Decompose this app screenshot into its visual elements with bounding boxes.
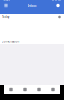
button[interactable]: Tab 3 — [32, 85, 46, 94]
button[interactable]: Tab 2 — [18, 85, 32, 94]
button[interactable]: More — [57, 14, 62, 19]
button[interactable]: Menu — [2, 2, 9, 9]
button[interactable]: Tab 4 — [46, 85, 60, 94]
button[interactable]: Tab 1 — [4, 85, 18, 94]
button[interactable]: Search — [54, 2, 61, 9]
staticText: Inbox — [27, 3, 36, 8]
staticText: Today — [2, 15, 9, 19]
staticText: Conversation — [1, 40, 19, 43]
staticText: 9:41 — [3, 0, 10, 2]
